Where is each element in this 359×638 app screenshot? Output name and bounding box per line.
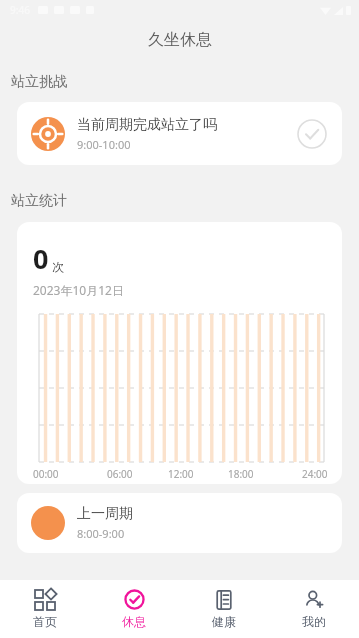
staticText: 久坐休息	[148, 30, 212, 50]
staticText: 8:00-9:00	[77, 526, 125, 541]
staticText: 当前周期完成站立了吗	[77, 116, 217, 134]
staticText: 上一周期	[77, 505, 133, 523]
button[interactable]: 我的	[269, 580, 359, 638]
staticText: 站立统计	[11, 192, 67, 210]
button[interactable]: 首页	[0, 580, 89, 638]
button[interactable]: 上一周期	[17, 493, 342, 553]
staticText: 12:00	[168, 467, 194, 481]
staticText: 9:00-10:00	[77, 137, 131, 152]
staticText: 次	[52, 259, 64, 274]
staticText: 00:00	[33, 467, 59, 481]
staticText: 健康	[212, 614, 236, 629]
button[interactable]: Mark complete	[296, 118, 328, 150]
staticText: 休息	[122, 614, 146, 629]
button[interactable]: 健康	[179, 580, 269, 638]
button[interactable]: 0	[17, 222, 342, 484]
button[interactable]: 休息	[89, 580, 179, 638]
staticText: 我的	[302, 614, 326, 629]
staticText: 18:00	[228, 467, 254, 481]
staticText: 2023年10月12日	[33, 282, 124, 298]
staticText: 24:00	[302, 467, 328, 481]
staticText: 0	[33, 240, 49, 277]
staticText: 06:00	[107, 467, 133, 481]
staticText: 站立挑战	[11, 73, 67, 91]
button[interactable]: 当前周期完成站立了吗	[17, 102, 342, 165]
staticText: 首页	[33, 614, 57, 629]
